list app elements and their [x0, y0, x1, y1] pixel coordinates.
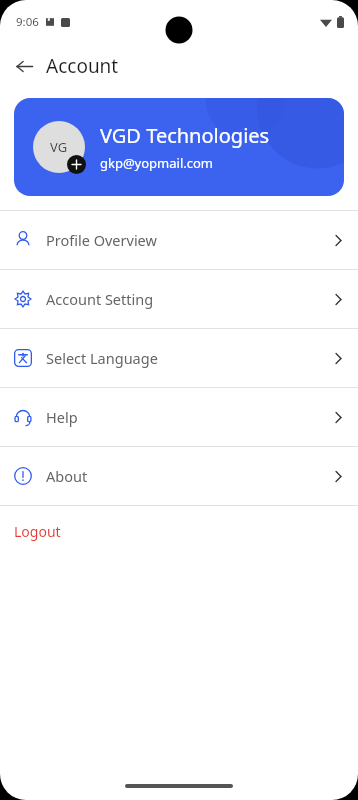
- staticText: Account Setting: [46, 289, 154, 309]
- button[interactable]: Select Language: [0, 329, 358, 387]
- staticText: VGD Technologies: [100, 122, 270, 149]
- button[interactable]: VG: [14, 98, 344, 196]
- button[interactable]: About: [0, 447, 358, 505]
- button[interactable]: Logout: [0, 506, 358, 556]
- button[interactable]: Change photo: [67, 155, 86, 174]
- staticText: About: [46, 466, 88, 486]
- staticText: 9:06: [16, 14, 39, 30]
- staticText: Logout: [14, 522, 61, 541]
- button[interactable]: Account Setting: [0, 270, 358, 328]
- staticText: Account: [46, 53, 119, 79]
- staticText: gkp@yopmail.com: [100, 154, 214, 172]
- staticText: VG: [50, 138, 68, 156]
- staticText: Help: [46, 407, 78, 427]
- staticText: Profile Overview: [46, 230, 157, 250]
- staticText: Select Language: [46, 348, 158, 368]
- button[interactable]: Profile Overview: [0, 211, 358, 269]
- button[interactable]: Back: [6, 48, 42, 84]
- button[interactable]: Help: [0, 388, 358, 446]
